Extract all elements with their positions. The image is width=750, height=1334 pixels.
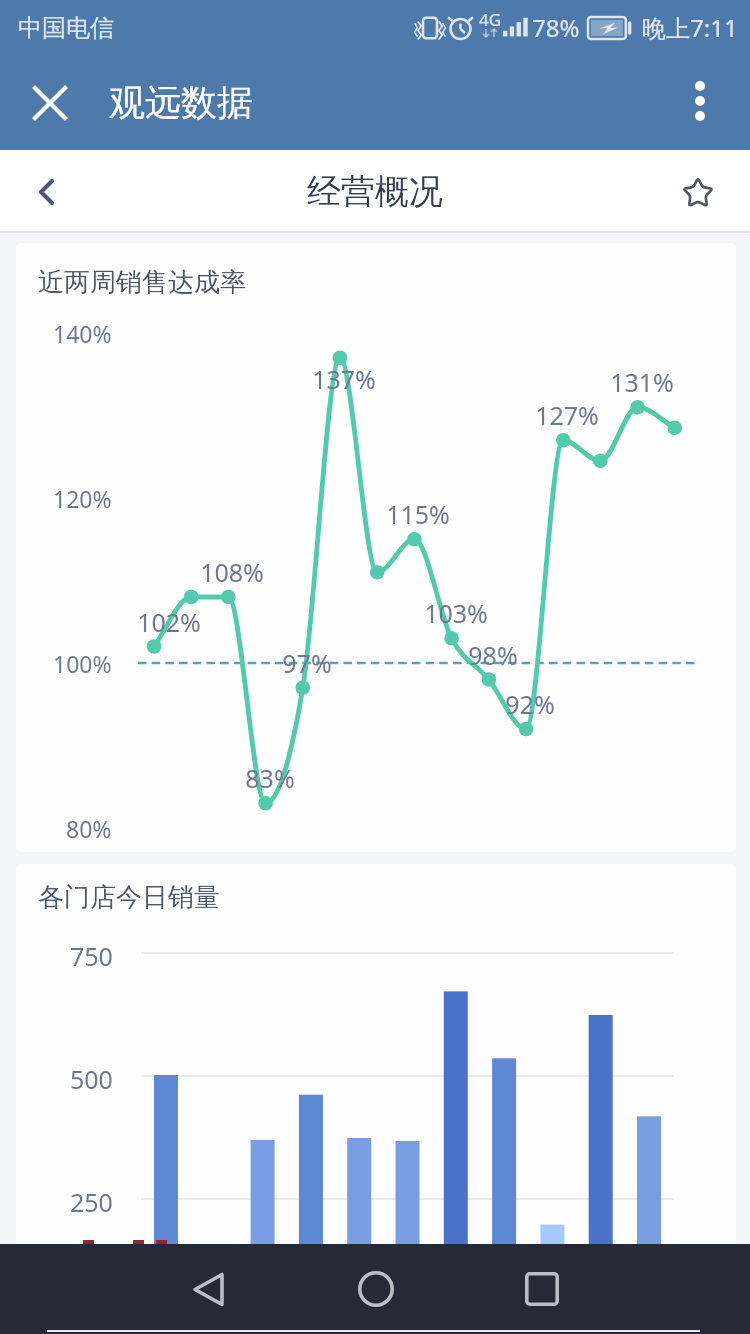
staticText: 127% — [535, 398, 599, 432]
button[interactable]: Favorite — [662, 156, 734, 228]
staticText: 137% — [312, 362, 376, 396]
staticText: 晚上7:11 — [642, 11, 738, 44]
staticText: 100% — [53, 648, 112, 679]
staticText: 102% — [137, 605, 201, 639]
button[interactable]: Home — [334, 1247, 418, 1331]
button[interactable]: More options — [664, 65, 736, 137]
staticText: 78% — [532, 11, 580, 44]
button[interactable]: Recents — [500, 1247, 584, 1331]
staticText: 观远数据 — [109, 80, 253, 125]
staticText: 103% — [424, 596, 488, 630]
button[interactable]: 各门店今日销量 — [16, 864, 736, 1334]
staticText: 500 — [70, 1062, 113, 1096]
button[interactable]: 近两周销售达成率 — [16, 243, 736, 852]
staticText: 98% — [468, 638, 518, 672]
staticText: 近两周销售达成率 — [38, 266, 246, 299]
staticText: 250 — [70, 1185, 113, 1219]
staticText: 750 — [70, 939, 113, 973]
staticText: 115% — [386, 497, 450, 531]
staticText: 131% — [610, 365, 674, 399]
staticText: 92% — [505, 687, 555, 721]
staticText: 各门店今日销量 — [38, 881, 220, 914]
staticText: 经营概况 — [307, 170, 443, 213]
button[interactable]: Back — [166, 1247, 250, 1331]
button[interactable]: Back — [10, 156, 82, 228]
staticText: 80% — [66, 813, 112, 844]
staticText: 120% — [53, 483, 112, 514]
staticText: 83% — [245, 761, 295, 795]
staticText: 4G — [479, 8, 502, 31]
staticText: 97% — [282, 646, 332, 680]
staticText: 108% — [200, 555, 264, 589]
staticText: 140% — [53, 318, 112, 349]
button[interactable]: Close — [14, 67, 86, 139]
staticText: 中国电信 — [18, 13, 114, 43]
